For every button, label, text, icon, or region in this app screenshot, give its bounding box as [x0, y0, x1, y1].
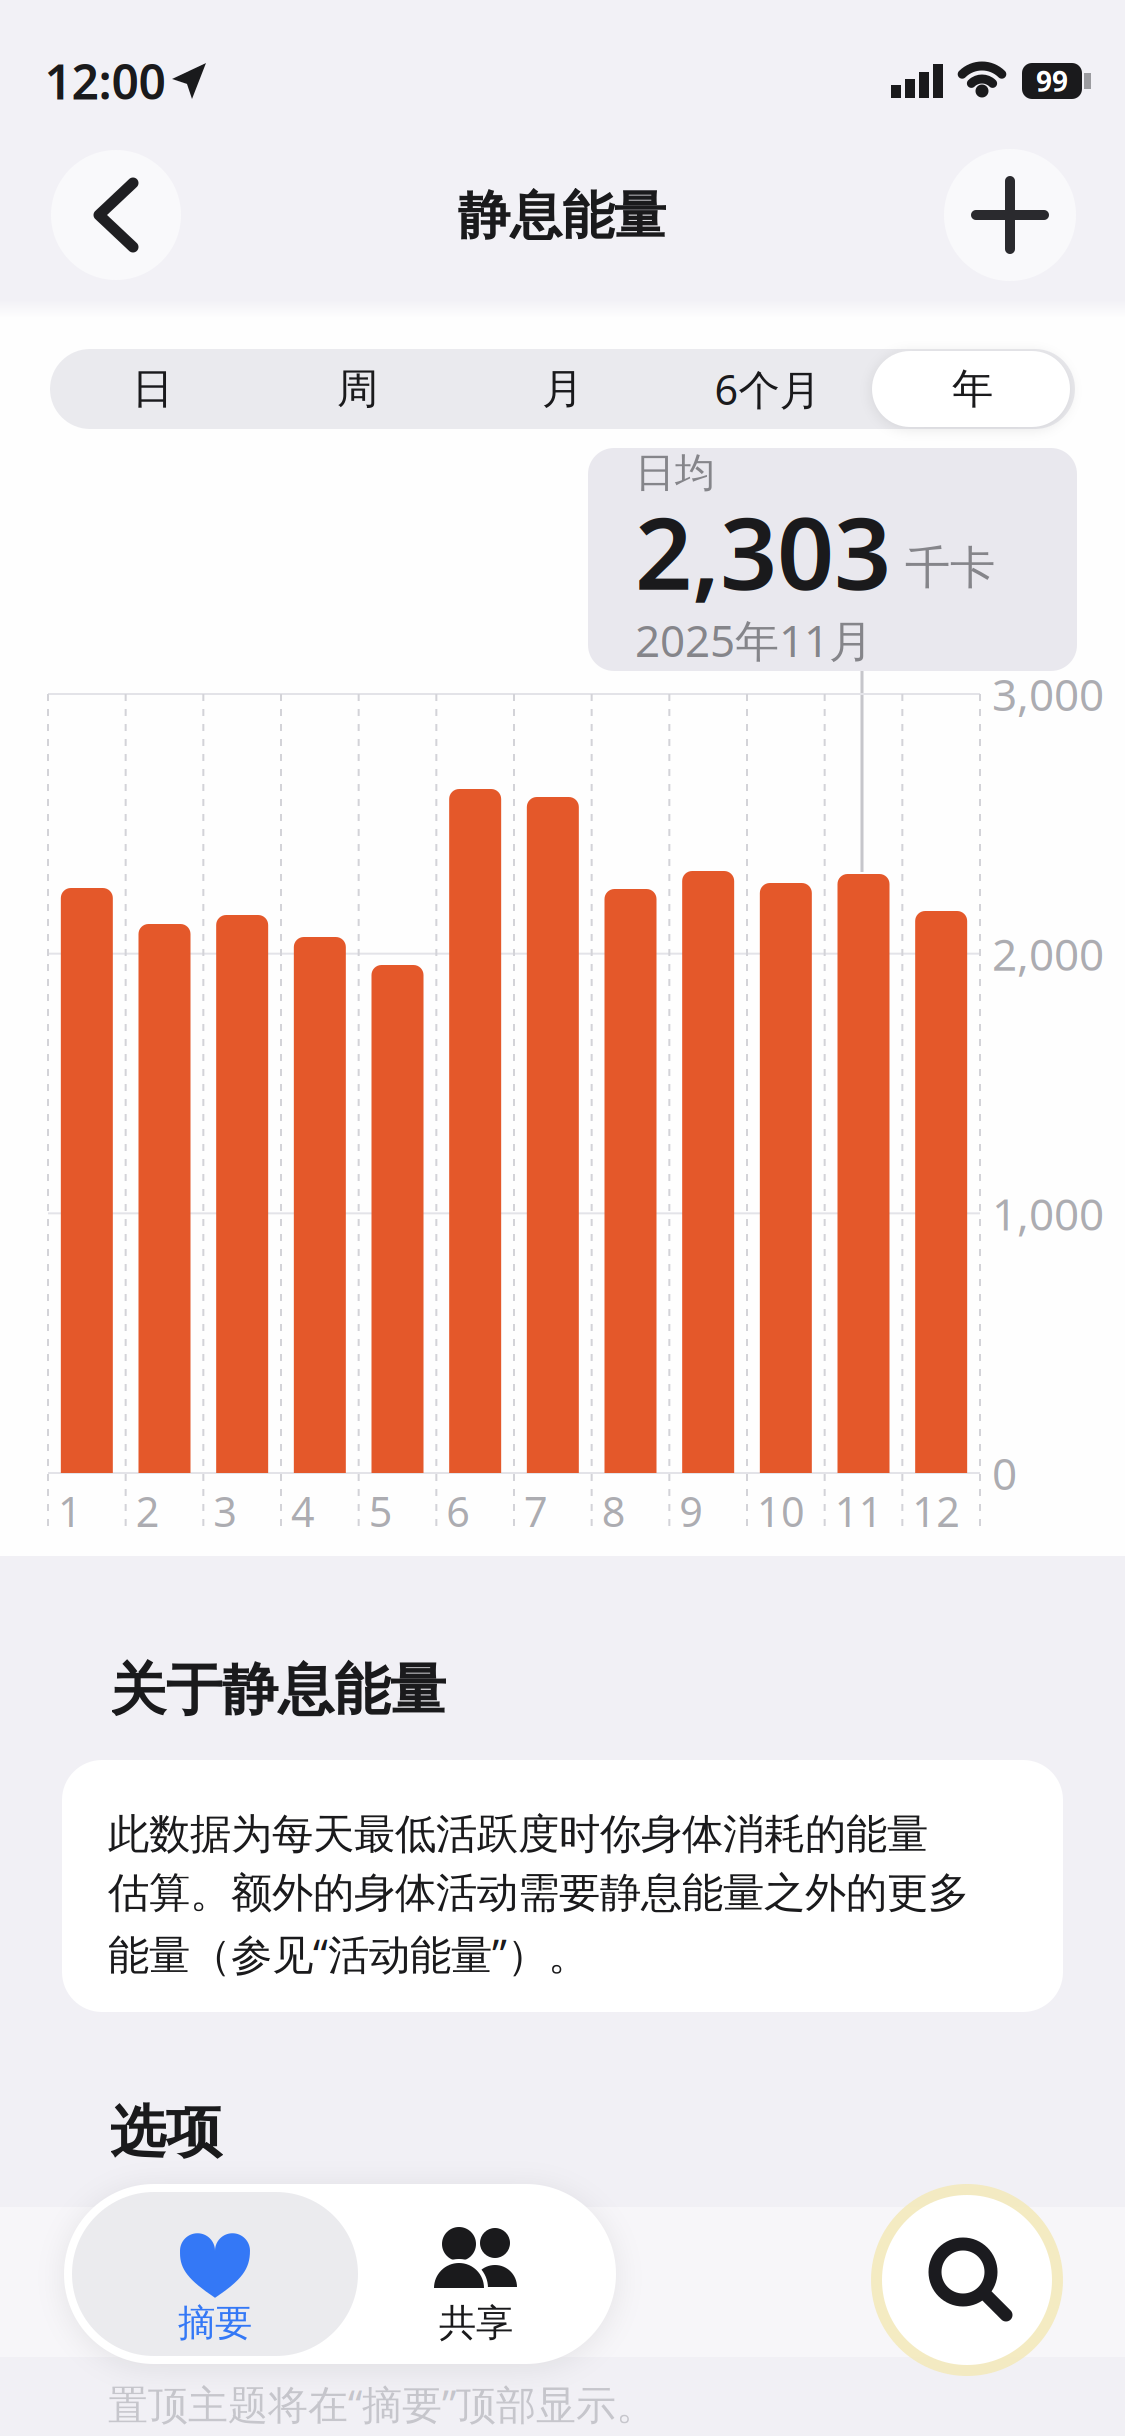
staticText: 99 [1036, 62, 1068, 100]
staticText: 周 [337, 364, 378, 414]
staticText: 0 [992, 1444, 1017, 1502]
staticText: 静息能量 [458, 184, 666, 248]
staticText: 3 [213, 1484, 237, 1538]
staticText: 月 [542, 364, 583, 414]
button[interactable] [51, 150, 181, 280]
button[interactable]: 周 [257, 349, 457, 429]
staticText: 6 [446, 1484, 470, 1538]
staticText: 2,000 [992, 924, 1104, 983]
staticText: 关于静息能量 [110, 1656, 446, 1724]
staticText: 日均 [635, 448, 715, 497]
button[interactable]: 年 [872, 349, 1072, 429]
staticText: 此数据为每天最低活跃度时你身体消耗的能量 [108, 1809, 928, 1860]
staticText: 日 [132, 364, 173, 414]
staticText: 选项 [110, 2098, 222, 2166]
staticText: 1,000 [992, 1184, 1104, 1242]
staticText: 12 [912, 1484, 960, 1538]
staticText: 6个月 [714, 362, 820, 416]
staticText: 2 [136, 1484, 160, 1538]
staticText: 估算。额外的身体活动需要静息能量之外的更多 [108, 1868, 969, 1918]
staticText: 4 [291, 1484, 315, 1538]
button[interactable]: 共享 [356, 2192, 596, 2356]
staticText: 摘要 [178, 2300, 252, 2346]
staticText: 11 [835, 1484, 883, 1538]
staticText: 2025年11月 [635, 611, 873, 669]
staticText: 12:00 [44, 49, 165, 113]
staticText: 置顶主题将在“摘要”顶部显示。 [108, 2377, 656, 2430]
staticText: 2,303 [635, 485, 891, 617]
staticText: 千卡 [905, 540, 995, 596]
button[interactable]: 月 [462, 349, 662, 429]
staticText: 8 [602, 1484, 626, 1538]
staticText: 10 [757, 1484, 805, 1538]
button[interactable] [944, 149, 1076, 281]
staticText: 共享 [439, 2300, 513, 2346]
button[interactable]: 摘要 [72, 2192, 358, 2356]
staticText: 3,000 [992, 665, 1104, 723]
button[interactable]: 日 [52, 349, 252, 429]
staticText: 7 [524, 1484, 548, 1538]
staticText: 5 [369, 1484, 393, 1538]
staticText: 能量（参见“活动能量”）。 [108, 1926, 589, 1981]
staticText: 年 [952, 364, 993, 414]
staticText: 1 [58, 1484, 82, 1538]
button[interactable]: 6个月 [667, 349, 867, 429]
staticText: 9 [679, 1484, 703, 1538]
button[interactable] [871, 2184, 1063, 2376]
